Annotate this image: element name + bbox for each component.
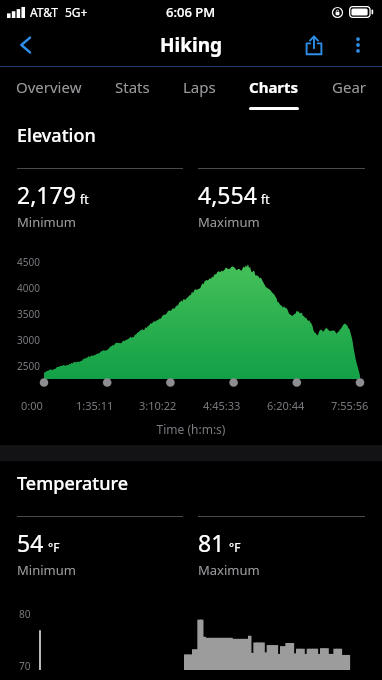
staticText: 3:10:22 <box>139 398 177 413</box>
button[interactable]: More options <box>336 24 380 66</box>
button[interactable]: Charts <box>249 67 299 113</box>
staticText: Charts <box>249 77 299 97</box>
button[interactable]: Overview <box>16 67 82 113</box>
staticText: ft <box>261 191 270 207</box>
staticText: 80 <box>19 607 31 621</box>
staticText: Hiking <box>160 32 223 58</box>
staticText: AT&T <box>30 4 58 20</box>
staticText: Gear <box>332 77 366 97</box>
staticText: 54 <box>17 527 44 558</box>
staticText: 6:06 PM <box>166 3 216 21</box>
staticText: Laps <box>183 77 216 97</box>
button[interactable]: Back <box>4 24 48 66</box>
staticText: Overview <box>16 77 82 97</box>
staticText: 4000 <box>17 281 40 295</box>
staticText: 6:20:44 <box>267 398 305 413</box>
staticText: Time (h:m:s) <box>0 421 382 437</box>
staticText: 81 <box>198 527 225 558</box>
staticText: 3500 <box>17 307 40 321</box>
staticText: 1:35:11 <box>76 398 114 413</box>
staticText: Minimum <box>17 213 76 231</box>
staticText: 4:45:33 <box>203 398 241 413</box>
staticText: Elevation <box>17 123 96 148</box>
staticText: Stats <box>115 77 150 97</box>
staticText: 5G+ <box>65 4 88 20</box>
staticText: Minimum <box>17 561 76 579</box>
button[interactable]: Gear <box>332 67 366 113</box>
staticText: 70 <box>19 659 31 673</box>
staticText: Temperature <box>17 471 129 496</box>
staticText: 0:00 <box>21 398 43 413</box>
staticText: 4,554 <box>198 179 257 210</box>
staticText: ft <box>80 191 89 207</box>
staticText: 2500 <box>17 359 40 373</box>
staticText: 3000 <box>17 333 40 347</box>
staticText: 4500 <box>17 255 40 269</box>
staticText: Maximum <box>198 561 260 579</box>
button[interactable]: Laps <box>183 67 216 113</box>
staticText: °F <box>48 539 60 555</box>
button[interactable]: Share <box>292 24 336 66</box>
staticText: 2,179 <box>17 179 76 210</box>
button[interactable]: Stats <box>115 67 150 113</box>
staticText: 7:55:56 <box>331 398 369 413</box>
staticText: Maximum <box>198 213 260 231</box>
staticText: °F <box>229 539 241 555</box>
